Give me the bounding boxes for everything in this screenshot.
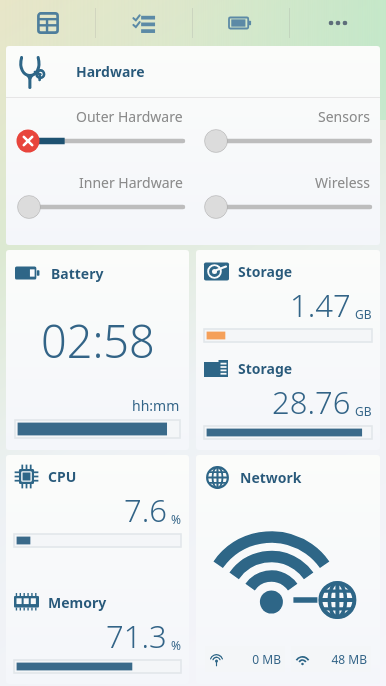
button[interactable]: Inner Hardware — [6, 173, 193, 218]
staticText: Battery — [51, 264, 104, 283]
staticText: 71.3 — [106, 615, 167, 657]
button[interactable]: Hardware — [6, 46, 380, 245]
staticText: Outer Hardware — [76, 107, 183, 126]
staticText: Sensors — [318, 107, 370, 126]
button[interactable]: Storage — [196, 250, 380, 450]
staticText: Wireless — [315, 173, 370, 192]
staticText: Storage — [238, 262, 293, 281]
button[interactable]: Tasks — [96, 0, 192, 46]
button[interactable]: Battery — [6, 250, 189, 450]
button[interactable]: 48 MB — [291, 646, 371, 672]
staticText: Inner Hardware — [79, 173, 183, 192]
button[interactable]: Wireless — [193, 173, 380, 218]
button[interactable]: Sensors — [193, 107, 380, 152]
staticText: 7.6 — [124, 489, 167, 531]
staticText: 02:58 — [41, 310, 155, 371]
button[interactable]: Dashboard — [0, 0, 95, 46]
button[interactable]: Battery — [193, 0, 289, 46]
button[interactable]: Storage — [204, 259, 372, 342]
staticText: 0 MB — [252, 651, 281, 667]
staticText: % — [171, 637, 181, 653]
staticText: Storage — [238, 359, 293, 378]
button[interactable]: More options — [290, 0, 386, 46]
button[interactable]: Outer Hardware — [6, 107, 193, 152]
button[interactable]: 0 MB — [205, 646, 285, 672]
button[interactable]: Network — [196, 455, 380, 684]
button[interactable]: Memory — [14, 590, 181, 673]
staticText: 28.76 — [272, 381, 351, 423]
staticText: 48 MB — [331, 651, 367, 667]
button[interactable]: CPU — [14, 464, 181, 547]
staticText: Memory — [48, 593, 107, 612]
staticText: hh:mm — [132, 396, 180, 415]
staticText: Network — [240, 468, 302, 487]
staticText: 1.47 — [290, 284, 351, 326]
staticText: CPU — [48, 467, 77, 486]
staticText: GB — [355, 403, 372, 419]
button[interactable]: CPU — [6, 455, 189, 684]
staticText: % — [171, 511, 181, 527]
staticText: GB — [355, 306, 372, 322]
button[interactable]: Storage — [204, 356, 372, 439]
staticText: Hardware — [76, 62, 145, 81]
